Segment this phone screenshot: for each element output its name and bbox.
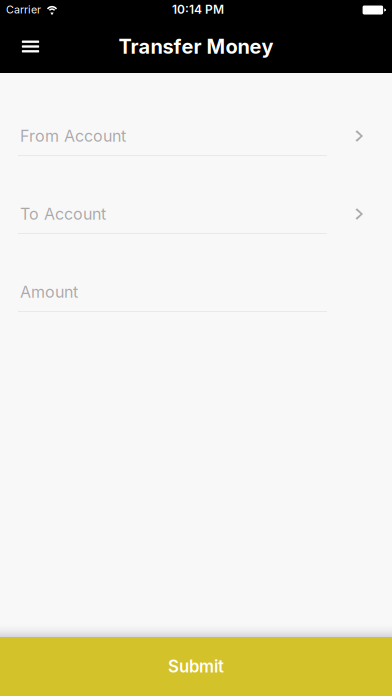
button[interactable]: From Account <box>0 112 392 190</box>
staticText: To Account <box>20 204 106 224</box>
staticText: From Account <box>20 126 126 146</box>
staticText: 10:14 PM <box>172 2 224 17</box>
button[interactable]: Menu <box>0 24 61 68</box>
staticText: Submit <box>168 656 224 677</box>
button[interactable]: Submit <box>0 637 392 696</box>
button[interactable]: Amount <box>0 268 392 346</box>
staticText: Carrier <box>6 3 41 16</box>
button[interactable]: To Account <box>0 190 392 268</box>
staticText: Transfer Money <box>118 34 273 59</box>
staticText: Amount <box>20 282 78 302</box>
